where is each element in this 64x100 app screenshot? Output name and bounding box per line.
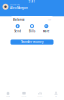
button[interactable]: Bills [25,24,39,33]
staticText: Balance [13,18,25,21]
button[interactable]: More [39,24,53,33]
staticText: Transfer money [21,40,43,44]
staticText: Bills [29,29,35,33]
staticText: Alex Morgan [10,6,28,10]
button[interactable]: Send [10,24,25,33]
staticText: USD [48,19,51,21]
staticText: Home [6,96,10,97]
staticText: Send [14,29,21,33]
staticText: Good morning [10,4,20,6]
staticText: Stats [37,96,42,97]
button[interactable]: Transfer money [10,39,53,45]
button[interactable]: Cards [16,91,32,97]
staticText: Cards [21,96,26,97]
staticText: Me [55,96,57,97]
button[interactable]: Me [48,91,64,97]
button[interactable]: Stats [32,91,48,97]
button[interactable]: Home [0,91,16,97]
staticText: 9:41 [28,0,35,3]
staticText: More [43,29,50,33]
